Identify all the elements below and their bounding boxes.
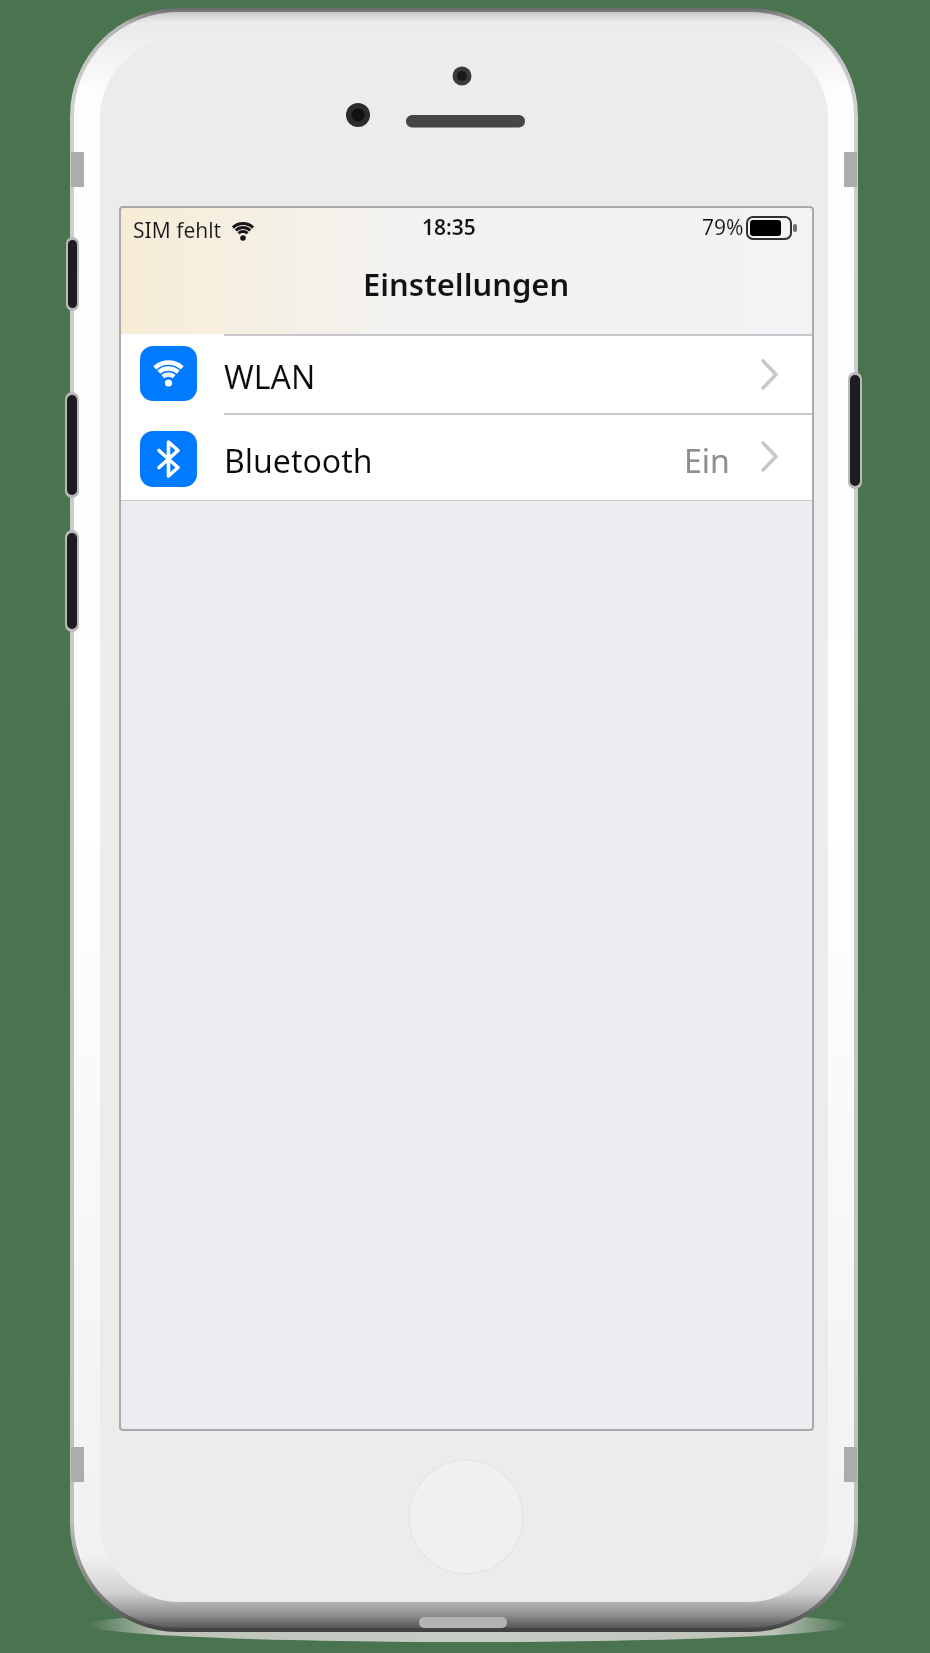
button[interactable]: WLAN bbox=[119, 335, 814, 413]
staticText: Ein bbox=[684, 439, 730, 479]
staticText: Bluetooth bbox=[224, 439, 373, 483]
staticText: 79% bbox=[702, 213, 744, 242]
button[interactable]: Bluetooth bbox=[119, 414, 814, 499]
staticText: Einstellungen bbox=[363, 263, 570, 305]
staticText: 18:35 bbox=[422, 213, 476, 242]
staticText: WLAN bbox=[224, 355, 316, 399]
staticText: SIM fehlt bbox=[133, 216, 222, 245]
